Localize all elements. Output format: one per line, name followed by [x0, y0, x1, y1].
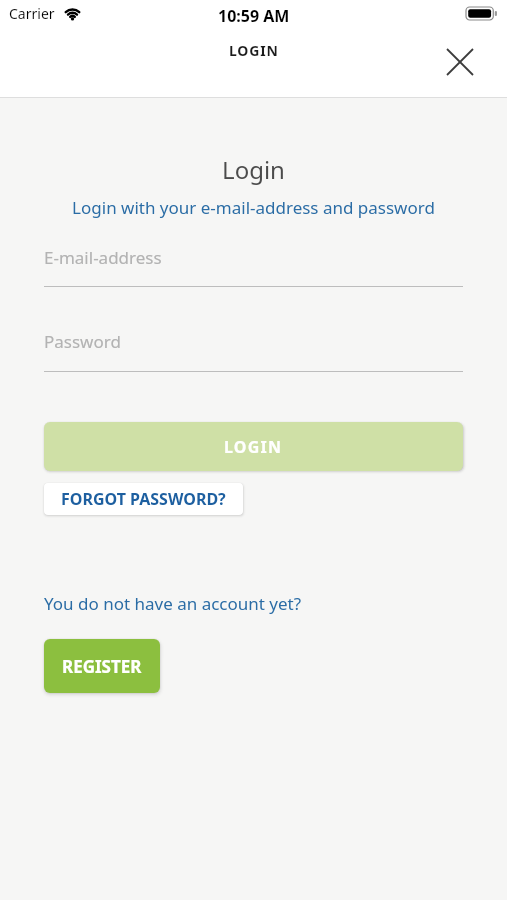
button[interactable]: REGISTER [44, 639, 160, 693]
staticText: You do not have an account yet? [44, 592, 302, 615]
staticText: Login with your e-mail-address and passw… [44, 196, 463, 219]
staticText: FORGOT PASSWORD? [61, 488, 226, 510]
staticText: E-mail-address [44, 246, 162, 269]
staticText: Carrier [9, 4, 55, 23]
button[interactable]: LOGIN [44, 422, 463, 471]
staticText: 10:59 AM [218, 5, 290, 27]
staticText: REGISTER [62, 655, 142, 678]
staticText: LOGIN [224, 436, 283, 458]
button[interactable] [445, 47, 475, 77]
staticText: Password [44, 330, 121, 353]
button[interactable]: FORGOT PASSWORD? [44, 483, 243, 515]
staticText: LOGIN [229, 41, 279, 60]
staticText: Login [44, 153, 463, 186]
